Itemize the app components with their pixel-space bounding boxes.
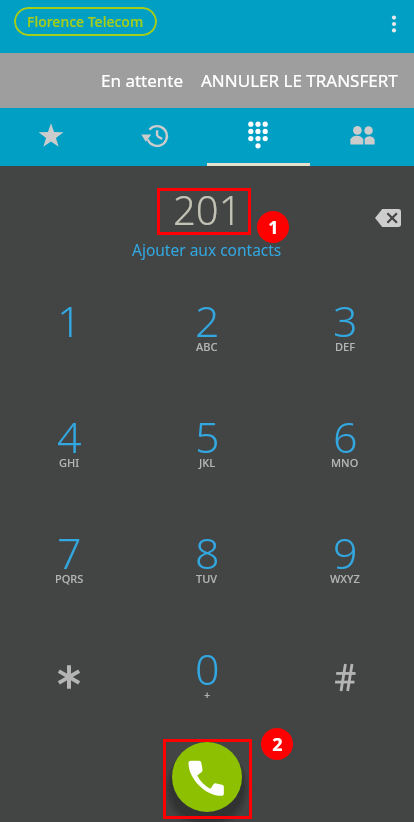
button[interactable]: Ajouter aux contacts xyxy=(122,237,292,262)
button[interactable]: Dialpad xyxy=(206,108,310,166)
staticText: 4 xyxy=(57,407,82,466)
staticText: 6 xyxy=(333,407,358,466)
staticText: Florence Telecom xyxy=(27,12,144,31)
button[interactable] xyxy=(276,612,414,728)
button[interactable]: 8 xyxy=(138,496,276,612)
staticText: En attente xyxy=(101,69,184,92)
staticText: 9 xyxy=(333,523,358,582)
button[interactable]: 2 xyxy=(138,264,276,380)
button[interactable]: 3 xyxy=(276,264,414,380)
button[interactable]: 4 xyxy=(0,380,138,496)
button[interactable]: Florence Telecom xyxy=(14,7,157,36)
staticText: 3 xyxy=(333,291,358,350)
staticText: ABC xyxy=(196,339,218,354)
staticText: JKL xyxy=(199,455,216,470)
button[interactable]: Call xyxy=(172,742,242,812)
staticText: Ajouter aux contacts xyxy=(132,239,282,260)
staticText: MNO xyxy=(331,455,359,470)
staticText: GHI xyxy=(59,455,80,470)
staticText: 7 xyxy=(57,523,82,582)
staticText: + xyxy=(204,687,211,702)
button[interactable]: Favorites xyxy=(0,108,103,166)
staticText: 201 xyxy=(173,182,242,232)
staticText: 2 xyxy=(272,732,283,757)
staticText: 5 xyxy=(195,407,220,466)
staticText: DEF xyxy=(335,339,355,354)
staticText: 2 xyxy=(195,291,220,350)
button[interactable]: 5 xyxy=(138,380,276,496)
button[interactable]: 9 xyxy=(276,496,414,612)
staticText: TUV xyxy=(196,571,218,586)
button[interactable]: 7 xyxy=(0,496,138,612)
button[interactable] xyxy=(0,612,138,728)
staticText: 1 xyxy=(268,215,279,240)
button[interactable]: En attente xyxy=(0,53,414,108)
staticText: 1 xyxy=(57,291,82,350)
button[interactable]: 0 xyxy=(138,612,276,728)
button[interactable]: Recent calls xyxy=(103,108,206,166)
button[interactable]: More options xyxy=(374,4,414,44)
staticText: ANNULER LE TRANSFERT xyxy=(201,69,398,92)
button[interactable]: Contacts xyxy=(310,108,414,166)
staticText: 8 xyxy=(195,523,220,582)
button[interactable]: Backspace xyxy=(366,196,410,240)
staticText: 0 xyxy=(195,639,220,698)
button[interactable]: 6 xyxy=(276,380,414,496)
button[interactable]: 1 xyxy=(0,264,138,380)
staticText: PQRS xyxy=(55,571,84,586)
staticText: WXYZ xyxy=(330,571,360,586)
